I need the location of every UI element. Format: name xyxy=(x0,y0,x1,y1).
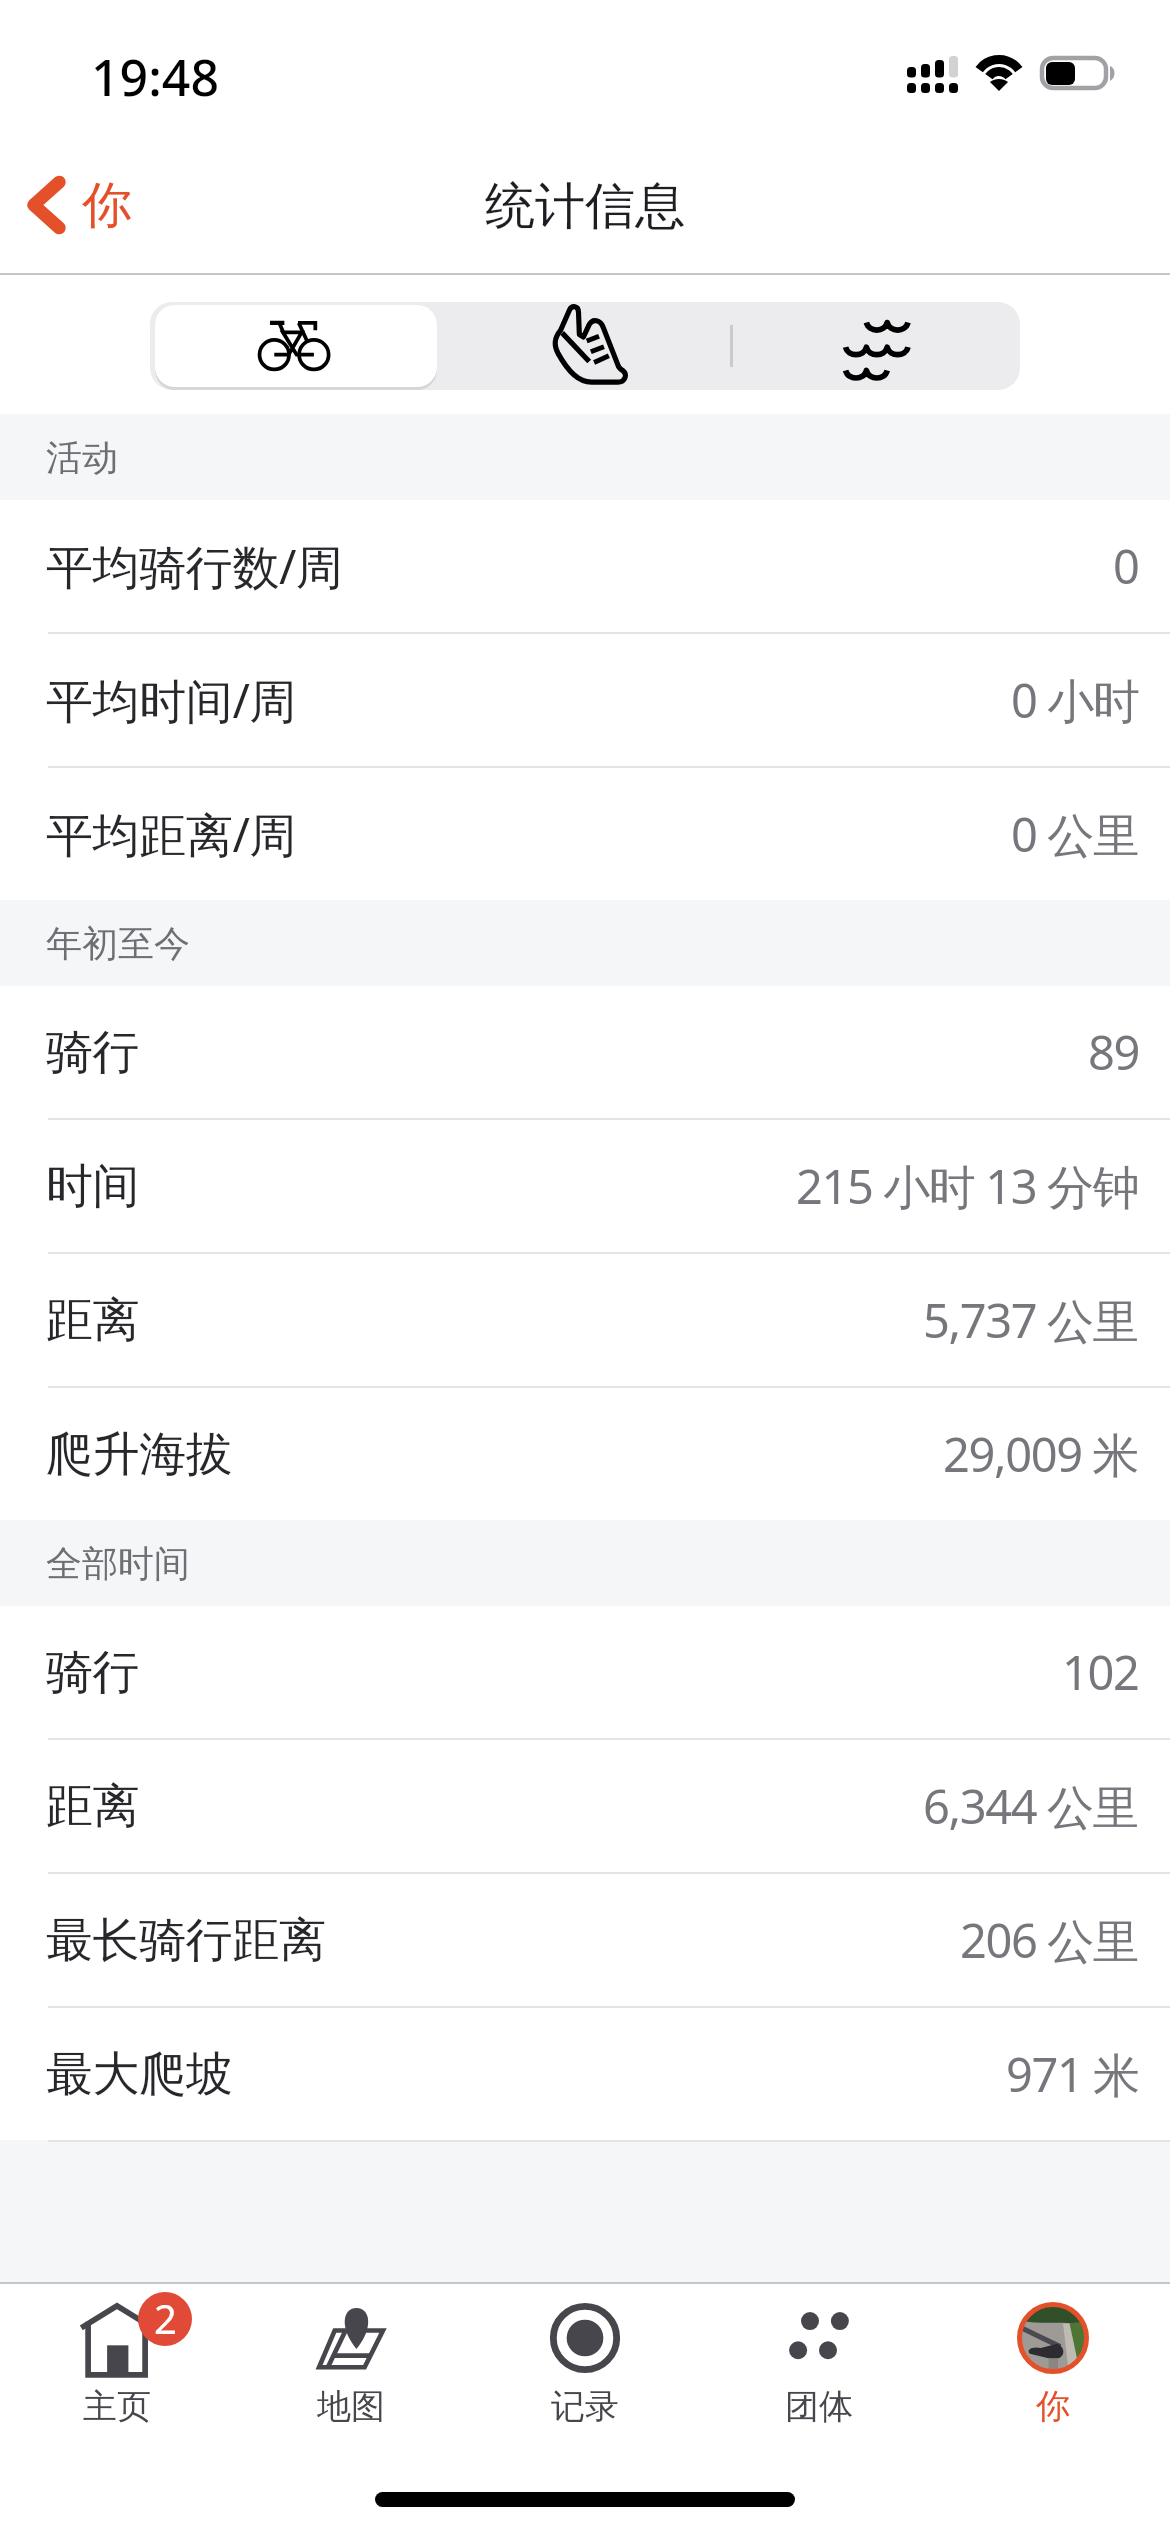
button[interactable]: 骑行 xyxy=(0,1606,1170,1738)
staticText: 骑行 xyxy=(46,1643,140,1702)
staticText: 地图 xyxy=(317,2385,385,2428)
staticText: 爬升海拔 xyxy=(46,1425,233,1484)
staticText: 活动 xyxy=(46,435,118,480)
staticText: 971 米 xyxy=(1006,2042,1139,2106)
button[interactable]: 团体 xyxy=(702,2284,936,2444)
staticText: 89 xyxy=(1088,1020,1139,1084)
button[interactable]: 平均距离/周 xyxy=(0,768,1170,900)
button[interactable]: 你 xyxy=(0,139,148,271)
button[interactable]: 主页 xyxy=(0,2284,234,2444)
staticText: 0 公里 xyxy=(1011,802,1139,866)
staticText: 距离 xyxy=(46,1777,140,1836)
button[interactable]: Running xyxy=(440,302,730,390)
button[interactable]: Cycling selected xyxy=(155,305,437,387)
staticText: 记录 xyxy=(551,2385,619,2428)
staticText: 206 公里 xyxy=(960,1908,1139,1972)
staticText: 2 xyxy=(154,2292,177,2345)
staticText: 平均时间/周 xyxy=(46,668,297,732)
staticText: 统计信息 xyxy=(485,175,685,238)
staticText: 0 小时 xyxy=(1011,668,1139,732)
button[interactable]: Cycling xyxy=(150,302,440,390)
button[interactable]: Profile xyxy=(936,2284,1170,2444)
staticText: 5,737 公里 xyxy=(923,1288,1139,1352)
staticText: 骑行 xyxy=(46,1023,140,1082)
button[interactable]: 平均时间/周 xyxy=(0,634,1170,766)
staticText: 最大爬坡 xyxy=(46,2045,233,2104)
staticText: 215 小时 13 分钟 xyxy=(796,1154,1139,1218)
button[interactable]: 爬升海拔 xyxy=(0,1388,1170,1520)
staticText: 0 xyxy=(1113,534,1139,598)
staticText: 你 xyxy=(1036,2385,1070,2428)
staticText: 19:48 xyxy=(91,43,219,111)
button[interactable]: 最长骑行距离 xyxy=(0,1874,1170,2006)
button[interactable]: 记录 xyxy=(468,2284,702,2444)
button[interactable]: 最大爬坡 xyxy=(0,2008,1170,2140)
button[interactable]: 平均骑行数/周 xyxy=(0,500,1170,632)
button[interactable]: 地图 xyxy=(234,2284,468,2444)
staticText: 你 xyxy=(82,174,132,237)
staticText: 平均距离/周 xyxy=(46,802,297,866)
staticText: 年初至今 xyxy=(46,921,190,966)
button[interactable]: 距离 xyxy=(0,1740,1170,1872)
staticText: 102 xyxy=(1062,1640,1139,1704)
staticText: 6,344 公里 xyxy=(923,1774,1139,1838)
button[interactable]: 距离 xyxy=(0,1254,1170,1386)
staticText: 平均骑行数/周 xyxy=(46,534,343,598)
staticText: 主页 xyxy=(83,2385,151,2428)
button[interactable]: 骑行 xyxy=(0,986,1170,1118)
staticText: 全部时间 xyxy=(46,1541,190,1586)
staticText: 时间 xyxy=(46,1157,140,1216)
staticText: 最长骑行距离 xyxy=(46,1911,326,1970)
staticText: 29,009 米 xyxy=(943,1422,1139,1486)
button[interactable]: 时间 xyxy=(0,1120,1170,1252)
staticText: 团体 xyxy=(785,2385,853,2428)
button[interactable]: Swimming xyxy=(730,302,1020,390)
staticText: 距离 xyxy=(46,1291,140,1350)
